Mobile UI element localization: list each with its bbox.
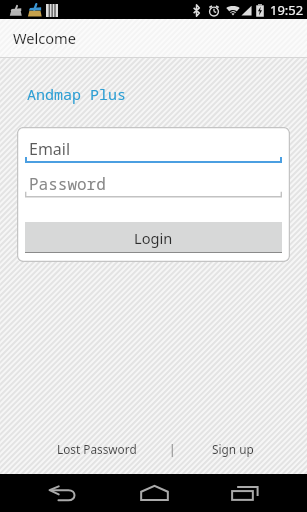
staticText: Password [29, 173, 106, 195]
button[interactable]: Lost Password [57, 441, 137, 457]
staticText: | [169, 441, 176, 457]
button[interactable]: Home [124, 474, 184, 512]
staticText: Welcome [13, 28, 76, 48]
staticText: Login [134, 228, 173, 248]
staticText: Andmap Plus [27, 84, 127, 104]
button[interactable]: Sign up [212, 441, 254, 457]
staticText: Email [29, 138, 71, 160]
button[interactable]: Login [25, 222, 282, 253]
button[interactable]: Back [32, 474, 92, 512]
button[interactable]: Recent apps [215, 474, 275, 512]
staticText: 19:52 [270, 1, 304, 19]
